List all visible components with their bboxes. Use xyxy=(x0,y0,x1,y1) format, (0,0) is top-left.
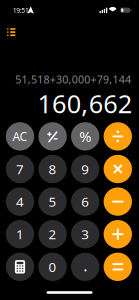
button[interactable]: 0 xyxy=(38,253,67,281)
button[interactable]: Equals xyxy=(104,253,132,281)
staticText: 8 xyxy=(49,160,57,178)
staticText: 1 xyxy=(16,225,24,243)
button[interactable]: 9 xyxy=(71,155,99,183)
button[interactable]: Multiply xyxy=(104,155,132,183)
button[interactable]: . xyxy=(71,253,99,281)
button[interactable]: Plus xyxy=(104,220,132,248)
button[interactable]: % xyxy=(71,122,99,151)
button[interactable]: History xyxy=(0,21,23,43)
staticText: 19:51 xyxy=(13,6,29,15)
staticText: 160,662 xyxy=(38,86,132,121)
button[interactable]: 1 xyxy=(6,220,34,248)
button[interactable]: Minus xyxy=(104,187,132,216)
button[interactable]: Plus minus xyxy=(38,122,67,151)
staticText: 51,518+30,000+79,144 xyxy=(15,72,131,86)
button[interactable]: 2 xyxy=(38,220,67,248)
staticText: 0 xyxy=(49,258,57,276)
staticText: . xyxy=(83,255,87,276)
button[interactable]: 5 xyxy=(38,187,67,216)
button[interactable]: 7 xyxy=(6,155,34,183)
button[interactable]: 6 xyxy=(71,187,99,216)
button[interactable]: Calculator xyxy=(6,253,34,281)
staticText: % xyxy=(79,127,91,146)
button[interactable]: 4 xyxy=(6,187,34,216)
staticText: 4 xyxy=(16,193,24,210)
button[interactable]: 8 xyxy=(38,155,67,183)
staticText: 6 xyxy=(81,193,89,210)
staticText: 7 xyxy=(16,160,24,178)
staticText: 2 xyxy=(49,225,57,243)
staticText: 5 xyxy=(49,193,57,210)
button[interactable]: Divide xyxy=(104,122,132,151)
staticText: 9 xyxy=(81,160,89,178)
button[interactable]: AC xyxy=(6,122,34,151)
staticText: 3 xyxy=(81,225,89,243)
staticText: AC xyxy=(12,128,27,144)
button[interactable]: 3 xyxy=(71,220,99,248)
